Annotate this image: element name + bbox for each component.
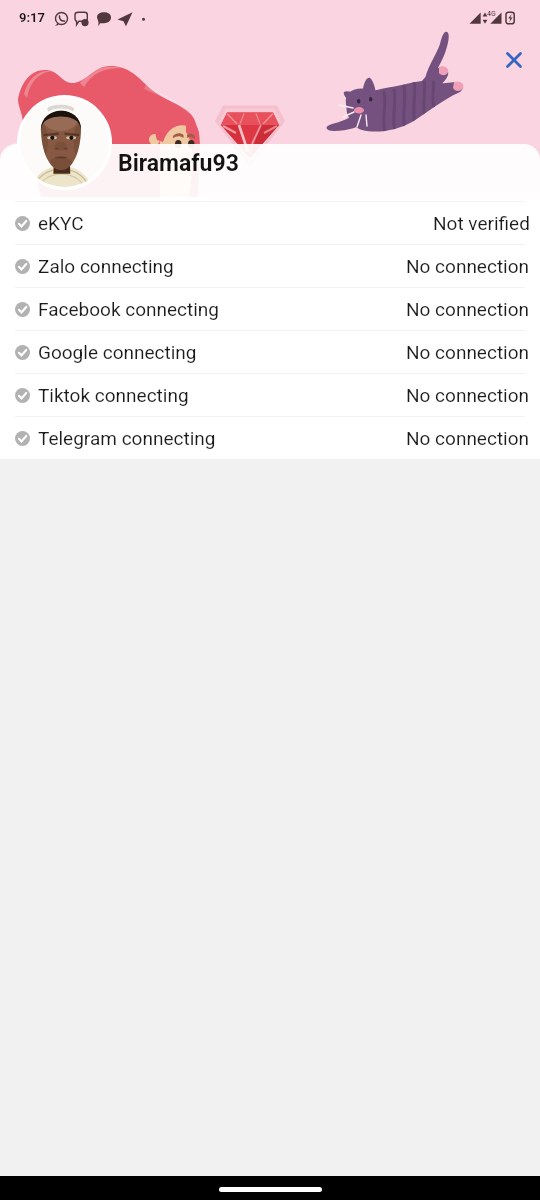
staticText: Not verified bbox=[433, 212, 530, 234]
staticText: Zalo connecting bbox=[38, 255, 174, 277]
staticText: Facebook connecting bbox=[38, 298, 220, 320]
button[interactable]: Telegram connecting bbox=[0, 417, 540, 459]
button[interactable]: Profile picture bbox=[17, 95, 112, 190]
button[interactable]: Tiktok connecting bbox=[0, 374, 540, 416]
staticText: No connection bbox=[406, 384, 530, 406]
button[interactable]: Facebook connecting bbox=[0, 288, 540, 330]
staticText: Google connecting bbox=[38, 341, 197, 363]
staticText: No connection bbox=[406, 427, 530, 449]
button[interactable]: eKYC bbox=[0, 202, 540, 244]
staticText: Tiktok connecting bbox=[38, 384, 189, 406]
staticText: No connection bbox=[406, 341, 530, 363]
button[interactable]: Close bbox=[496, 42, 532, 78]
staticText: Telegram connecting bbox=[38, 427, 216, 449]
staticText: eKYC bbox=[38, 212, 84, 234]
button[interactable]: Zalo connecting bbox=[0, 245, 540, 287]
staticText: No connection bbox=[406, 255, 530, 277]
staticText: No connection bbox=[406, 298, 530, 320]
staticText: 4G bbox=[487, 10, 496, 18]
staticText: Biramafu93 bbox=[118, 150, 239, 177]
staticText: 9:17 bbox=[19, 10, 46, 25]
button[interactable]: Google connecting bbox=[0, 331, 540, 373]
